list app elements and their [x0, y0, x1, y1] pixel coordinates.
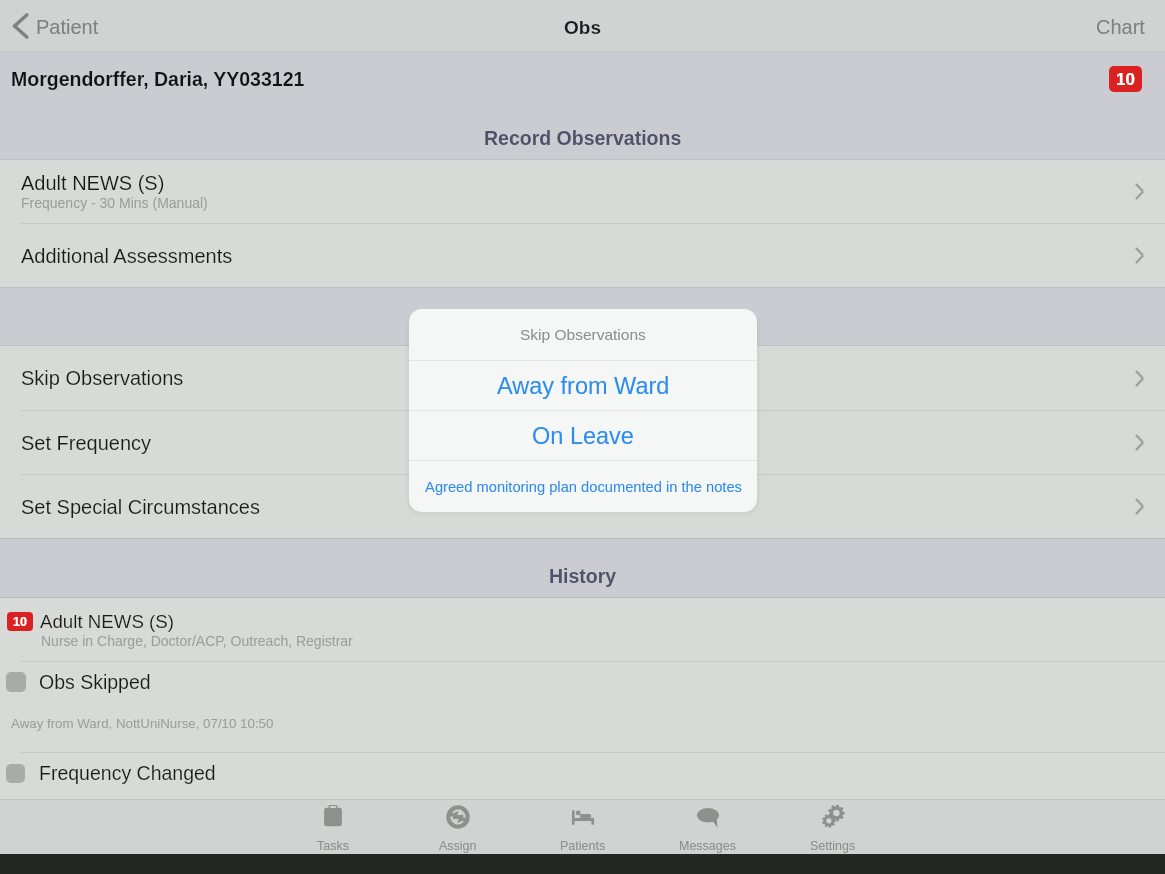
staticText: Adult NEWS (S) — [40, 611, 174, 632]
staticText: 10 — [1116, 70, 1135, 89]
button[interactable]: Back to Patient — [0, 8, 109, 44]
staticText: Additional Assessments — [21, 245, 233, 267]
staticText: History — [549, 565, 617, 587]
staticText: Agreed monitoring plan documented in the… — [425, 479, 742, 495]
button[interactable]: Patients — [520, 800, 645, 854]
button[interactable]: Away from Ward — [409, 361, 757, 410]
button[interactable]: Adult NEWS (S) — [0, 160, 1165, 223]
staticText: Nurse in Charge, Doctor/ACP, Outreach, R… — [41, 633, 353, 649]
staticText: Set Special Circumstances — [21, 496, 260, 518]
button[interactable]: Chart — [1078, 7, 1165, 45]
staticText: Record Observations — [484, 127, 682, 149]
staticText: Skip Observations — [21, 367, 184, 389]
staticText: Obs Skipped — [39, 671, 151, 693]
staticText: Skip Observations — [520, 326, 646, 343]
button[interactable]: Set Frequency — [0, 411, 1165, 474]
staticText: Adult NEWS (S) — [21, 172, 165, 194]
button[interactable]: Skip Observations — [0, 346, 1165, 410]
staticText: Chart — [1096, 16, 1145, 38]
staticText: Patient — [36, 16, 99, 38]
button[interactable]: Set Special Circumstances — [0, 475, 1165, 538]
button[interactable]: Assign — [395, 800, 520, 854]
staticText: Patients — [560, 839, 606, 853]
staticText: Frequency - 30 Mins (Manual) — [21, 195, 208, 211]
button[interactable]: 10 — [0, 598, 1165, 661]
staticText: Frequency Changed — [39, 762, 216, 784]
staticText: On Leave — [532, 423, 634, 449]
button[interactable]: Additional Assessments — [0, 224, 1165, 287]
button[interactable]: Agreed monitoring plan documented in the… — [409, 461, 757, 512]
button[interactable]: Frequency Changed — [0, 753, 1165, 799]
button[interactable]: Obs Skipped — [0, 662, 1165, 752]
staticText: 10 — [13, 615, 27, 629]
button[interactable]: Messages — [645, 800, 770, 854]
button[interactable]: Settings — [770, 800, 895, 854]
staticText: Away from Ward, NottUniNurse, 07/10 10:5… — [11, 716, 274, 731]
staticText: Set Frequency — [21, 432, 152, 454]
staticText: Messages — [679, 839, 736, 853]
staticText: Morgendorffer, Daria, YY033121 — [11, 68, 305, 90]
staticText: Away from Ward — [497, 373, 670, 399]
staticText: Settings — [810, 839, 856, 853]
button[interactable]: Tasks — [270, 800, 395, 854]
button[interactable]: On Leave — [409, 411, 757, 460]
staticText: Obs — [564, 17, 601, 38]
staticText: Assign — [439, 839, 477, 853]
staticText: Tasks — [317, 839, 349, 853]
